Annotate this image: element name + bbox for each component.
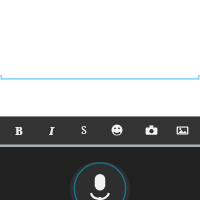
button[interactable]: Take photo (137, 116, 165, 144)
staticText: I (49, 123, 54, 138)
staticText: B (15, 123, 23, 138)
staticText: S (81, 123, 87, 137)
button[interactable]: Insert emoji (103, 116, 131, 144)
button[interactable]: Bold (5, 116, 33, 144)
button[interactable]: Insert picture (168, 116, 196, 144)
button[interactable]: Italic (37, 116, 65, 144)
button[interactable]: Voice input (70, 162, 130, 200)
button[interactable]: Strikethrough (70, 116, 98, 144)
button[interactable] (0, 0, 200, 116)
